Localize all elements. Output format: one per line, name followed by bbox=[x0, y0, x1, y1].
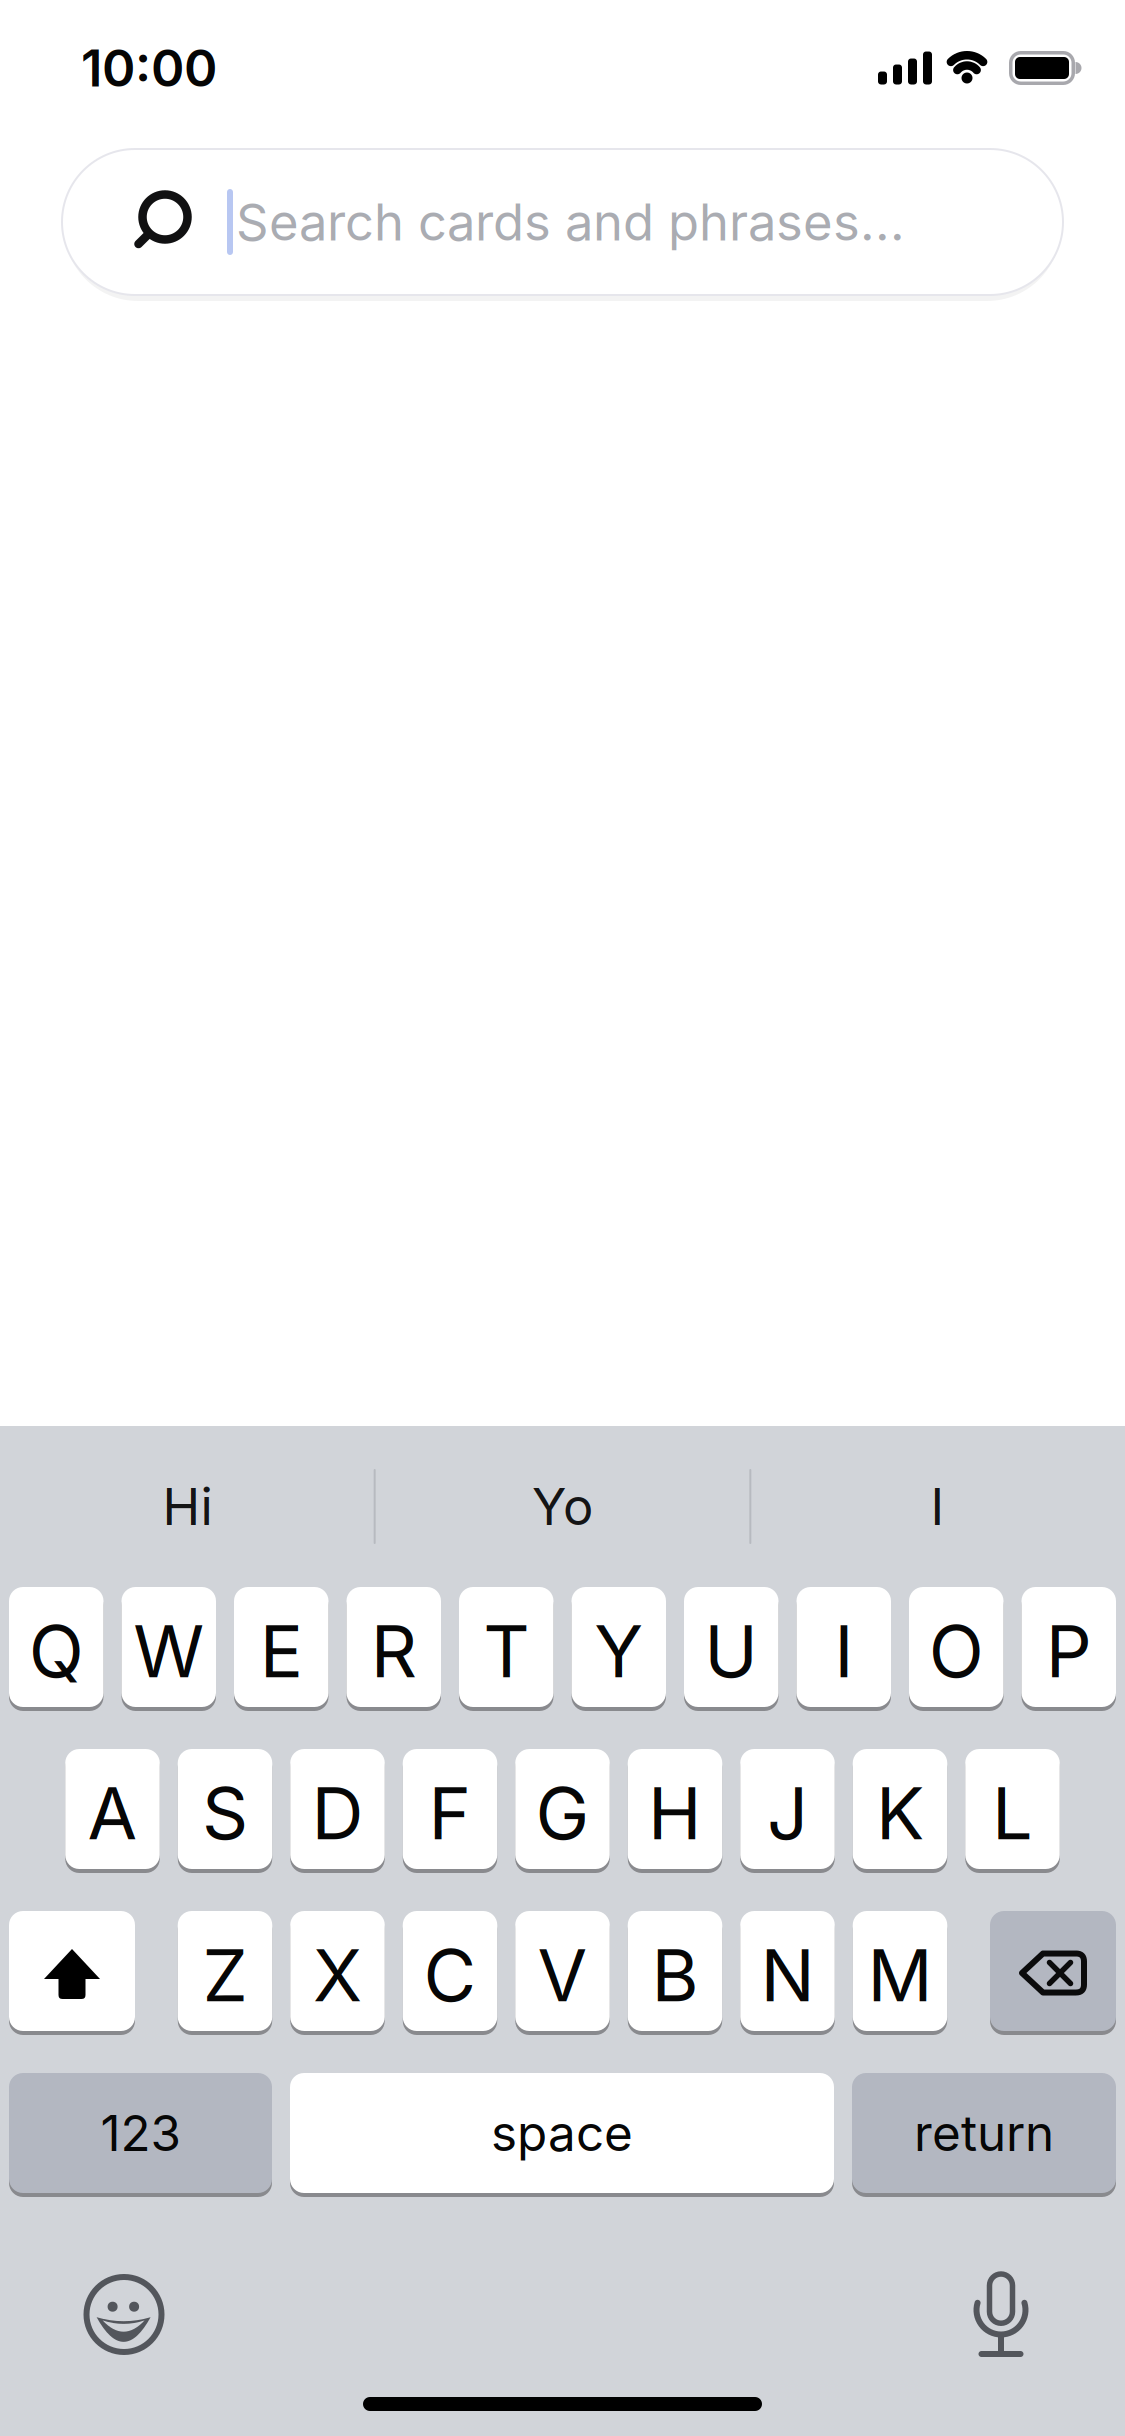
button[interactable]: K bbox=[853, 1749, 947, 1869]
staticText: E bbox=[260, 1608, 303, 1693]
button[interactable]: T bbox=[459, 1587, 553, 1707]
button[interactable]: S bbox=[178, 1749, 272, 1869]
staticText: Y bbox=[594, 1608, 643, 1693]
staticText: J bbox=[767, 1770, 808, 1855]
staticText: N bbox=[760, 1932, 814, 2017]
button[interactable]: U bbox=[684, 1587, 778, 1707]
staticText: V bbox=[537, 1932, 587, 2017]
staticText: Q bbox=[29, 1608, 84, 1693]
button[interactable]: Yo bbox=[375, 1426, 750, 1587]
button[interactable]: M bbox=[853, 1911, 947, 2031]
staticText: Z bbox=[202, 1932, 247, 2017]
staticText: F bbox=[428, 1770, 471, 1855]
staticText: G bbox=[535, 1770, 589, 1855]
button[interactable]: Y bbox=[571, 1587, 666, 1707]
staticText: D bbox=[311, 1770, 363, 1855]
staticText: Hi bbox=[162, 1477, 212, 1536]
button[interactable]: G bbox=[515, 1749, 610, 1869]
staticText: space bbox=[491, 2104, 633, 2162]
button[interactable]: return bbox=[852, 2073, 1116, 2193]
staticText: H bbox=[648, 1770, 702, 1855]
staticText: W bbox=[133, 1608, 204, 1693]
staticText: X bbox=[313, 1932, 362, 2017]
button[interactable]: B bbox=[628, 1911, 722, 2031]
button[interactable]: Z bbox=[178, 1911, 272, 2031]
button[interactable]: F bbox=[403, 1749, 497, 1869]
button[interactable]: I bbox=[796, 1587, 891, 1707]
staticText: S bbox=[202, 1770, 248, 1855]
button[interactable]: O bbox=[909, 1587, 1003, 1707]
button[interactable]: L bbox=[965, 1749, 1060, 1869]
button[interactable]: H bbox=[628, 1749, 722, 1869]
staticText: Yo bbox=[532, 1477, 593, 1536]
staticText: Search cards and phrases... bbox=[236, 192, 905, 252]
button[interactable]: Shift bbox=[9, 1911, 135, 2031]
staticText: O bbox=[929, 1608, 984, 1693]
staticText: I bbox=[930, 1477, 944, 1536]
button[interactable]: V bbox=[515, 1911, 610, 2031]
staticText: M bbox=[867, 1932, 932, 2017]
button[interactable]: P bbox=[1021, 1587, 1116, 1707]
button[interactable]: D bbox=[290, 1749, 385, 1869]
button[interactable]: Emoji bbox=[82, 2272, 166, 2356]
staticText: A bbox=[87, 1770, 137, 1855]
button[interactable]: Delete bbox=[990, 1911, 1116, 2031]
staticText: 123 bbox=[100, 2104, 180, 2162]
staticText: K bbox=[876, 1770, 924, 1855]
button[interactable]: W bbox=[121, 1587, 216, 1707]
button[interactable]: R bbox=[346, 1587, 441, 1707]
button[interactable]: J bbox=[740, 1749, 835, 1869]
staticText: T bbox=[483, 1608, 529, 1693]
button[interactable]: Dictate bbox=[972, 2269, 1030, 2360]
staticText: 10:00 bbox=[81, 38, 217, 98]
button[interactable]: Q bbox=[9, 1587, 103, 1707]
staticText: return bbox=[914, 2104, 1054, 2162]
button[interactable]: N bbox=[740, 1911, 835, 2031]
button[interactable]: I bbox=[750, 1426, 1125, 1587]
button[interactable]: 123 bbox=[9, 2073, 272, 2193]
staticText: U bbox=[704, 1608, 758, 1693]
button[interactable]: C bbox=[403, 1911, 497, 2031]
staticText: R bbox=[371, 1608, 417, 1693]
staticText: B bbox=[651, 1932, 698, 2017]
button[interactable]: space bbox=[290, 2073, 834, 2193]
button[interactable]: Search cards and phrases bbox=[61, 148, 1064, 296]
staticText: L bbox=[992, 1770, 1033, 1855]
button[interactable]: A bbox=[65, 1749, 160, 1869]
button[interactable]: X bbox=[290, 1911, 385, 2031]
button[interactable]: Hi bbox=[0, 1426, 375, 1587]
staticText: P bbox=[1046, 1608, 1092, 1693]
button[interactable]: E bbox=[234, 1587, 328, 1707]
staticText: I bbox=[834, 1608, 853, 1693]
staticText: C bbox=[423, 1932, 476, 2017]
